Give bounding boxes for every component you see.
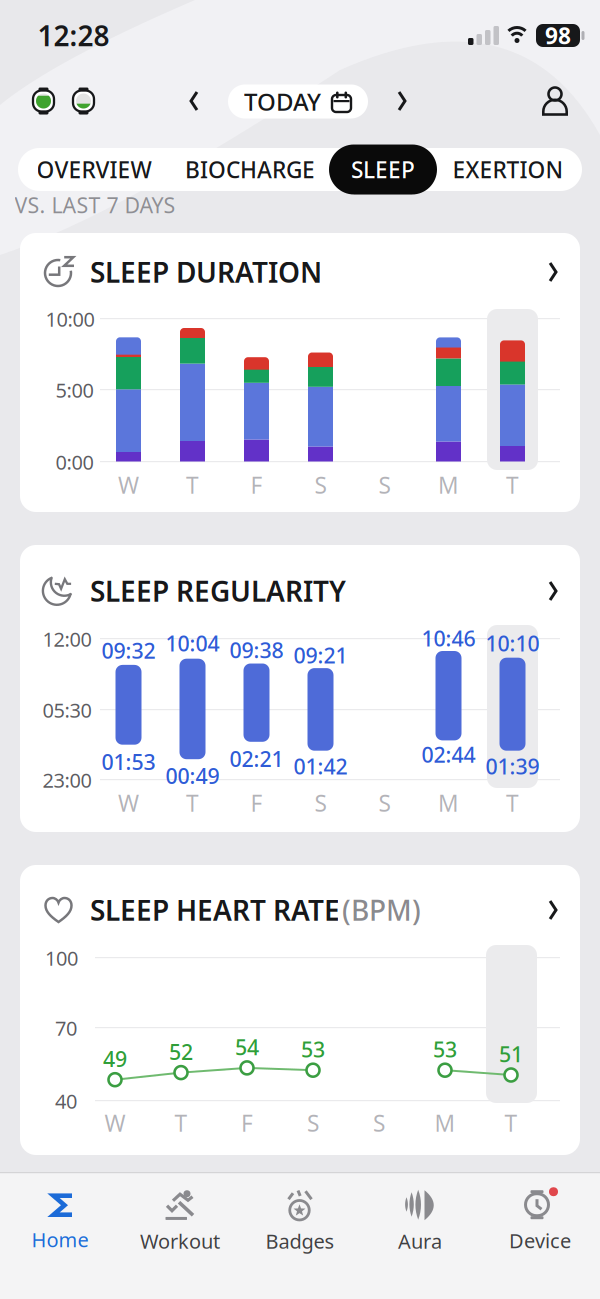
staticText: W bbox=[118, 470, 139, 500]
staticText: T bbox=[506, 470, 519, 500]
staticText: 09:38 bbox=[229, 636, 283, 664]
staticText: Aura bbox=[398, 1228, 442, 1254]
staticText: 00:49 bbox=[165, 761, 219, 790]
button[interactable]: Previous day bbox=[179, 86, 209, 116]
staticText: Device bbox=[509, 1227, 571, 1254]
button[interactable]: Workout bbox=[125, 1185, 235, 1259]
staticText: F bbox=[250, 470, 262, 500]
button[interactable]: Sleep regularity details bbox=[44, 566, 560, 616]
staticText: S bbox=[378, 470, 390, 500]
staticText: SLEEP bbox=[351, 154, 415, 184]
staticText: 23:00 bbox=[42, 767, 91, 793]
staticText: 52 bbox=[169, 1037, 193, 1066]
staticText: 98 bbox=[545, 20, 571, 50]
button[interactable]: OVERVIEW bbox=[24, 148, 164, 191]
staticText: S bbox=[378, 788, 390, 818]
staticText: 01:53 bbox=[101, 747, 155, 776]
staticText: S bbox=[314, 788, 326, 818]
staticText: 40 bbox=[55, 1088, 77, 1114]
staticText: F bbox=[250, 788, 262, 818]
staticText: T bbox=[186, 788, 199, 818]
staticText: 10:00 bbox=[45, 306, 94, 332]
button[interactable]: Home bbox=[5, 1185, 115, 1259]
staticText: 5:00 bbox=[55, 377, 93, 403]
staticText: OVERVIEW bbox=[36, 154, 151, 184]
staticText: S bbox=[307, 1108, 319, 1138]
button[interactable]: Badges bbox=[245, 1185, 355, 1259]
staticText: 01:42 bbox=[293, 752, 347, 780]
staticText: 54 bbox=[235, 1033, 259, 1061]
button[interactable]: Sleep heart rate details bbox=[44, 885, 560, 935]
staticText: 49 bbox=[103, 1044, 127, 1073]
staticText: T bbox=[504, 1108, 517, 1138]
staticText: Workout bbox=[140, 1228, 220, 1254]
staticText: 09:21 bbox=[293, 641, 347, 669]
staticText: T bbox=[506, 788, 519, 818]
staticText: 53 bbox=[301, 1035, 325, 1063]
staticText: SLEEP REGULARITY bbox=[90, 572, 346, 610]
staticText: 0:00 bbox=[55, 449, 93, 475]
staticText: 01:39 bbox=[485, 752, 539, 780]
staticText: 100 bbox=[45, 945, 78, 971]
staticText: 05:30 bbox=[42, 697, 91, 723]
staticText: S bbox=[314, 470, 326, 500]
button[interactable]: BIOCHARGE bbox=[170, 148, 330, 191]
staticText: T bbox=[186, 470, 199, 500]
staticText: TODAY bbox=[244, 86, 321, 117]
staticText: Home bbox=[31, 1226, 88, 1253]
staticText: Badges bbox=[265, 1228, 334, 1254]
staticText: F bbox=[241, 1108, 253, 1138]
staticText: SLEEP HEART RATE bbox=[90, 891, 340, 929]
button[interactable]: Next day bbox=[387, 86, 417, 116]
staticText: 02:44 bbox=[421, 740, 475, 768]
button[interactable]: Watch 2 battery bbox=[72, 87, 94, 115]
staticText: W bbox=[118, 788, 139, 818]
staticText: 09:32 bbox=[101, 636, 155, 665]
staticText: T bbox=[174, 1108, 187, 1138]
staticText: 70 bbox=[55, 1015, 77, 1041]
staticText: S bbox=[373, 1108, 385, 1138]
button[interactable]: EXERTION bbox=[443, 148, 573, 191]
button[interactable]: Device bbox=[485, 1185, 595, 1259]
staticText: SLEEP DURATION bbox=[90, 253, 322, 291]
staticText: M bbox=[434, 1108, 455, 1138]
button[interactable]: SLEEP bbox=[329, 144, 437, 194]
staticText: 02:21 bbox=[229, 744, 283, 773]
staticText: 53 bbox=[433, 1035, 457, 1063]
staticText: 10:04 bbox=[165, 629, 219, 657]
staticText: VS. LAST 7 DAYS bbox=[14, 191, 175, 219]
staticText: 12:00 bbox=[42, 626, 91, 652]
staticText: M bbox=[438, 470, 459, 500]
staticText: (BPM) bbox=[342, 891, 421, 929]
button[interactable]: Profile bbox=[542, 86, 568, 115]
button[interactable]: Watch 1 battery bbox=[32, 87, 54, 115]
staticText: EXERTION bbox=[452, 154, 563, 184]
staticText: 12:28 bbox=[37, 17, 109, 54]
button[interactable]: Select date bbox=[228, 84, 368, 118]
staticText: 51 bbox=[499, 1040, 523, 1068]
staticText: W bbox=[104, 1108, 125, 1138]
staticText: M bbox=[438, 788, 459, 818]
button[interactable]: Sleep duration details bbox=[44, 247, 560, 297]
staticText: 10:10 bbox=[485, 629, 539, 657]
staticText: BIOCHARGE bbox=[185, 154, 315, 184]
button[interactable]: Aura bbox=[365, 1185, 475, 1259]
staticText: 10:46 bbox=[421, 624, 475, 652]
